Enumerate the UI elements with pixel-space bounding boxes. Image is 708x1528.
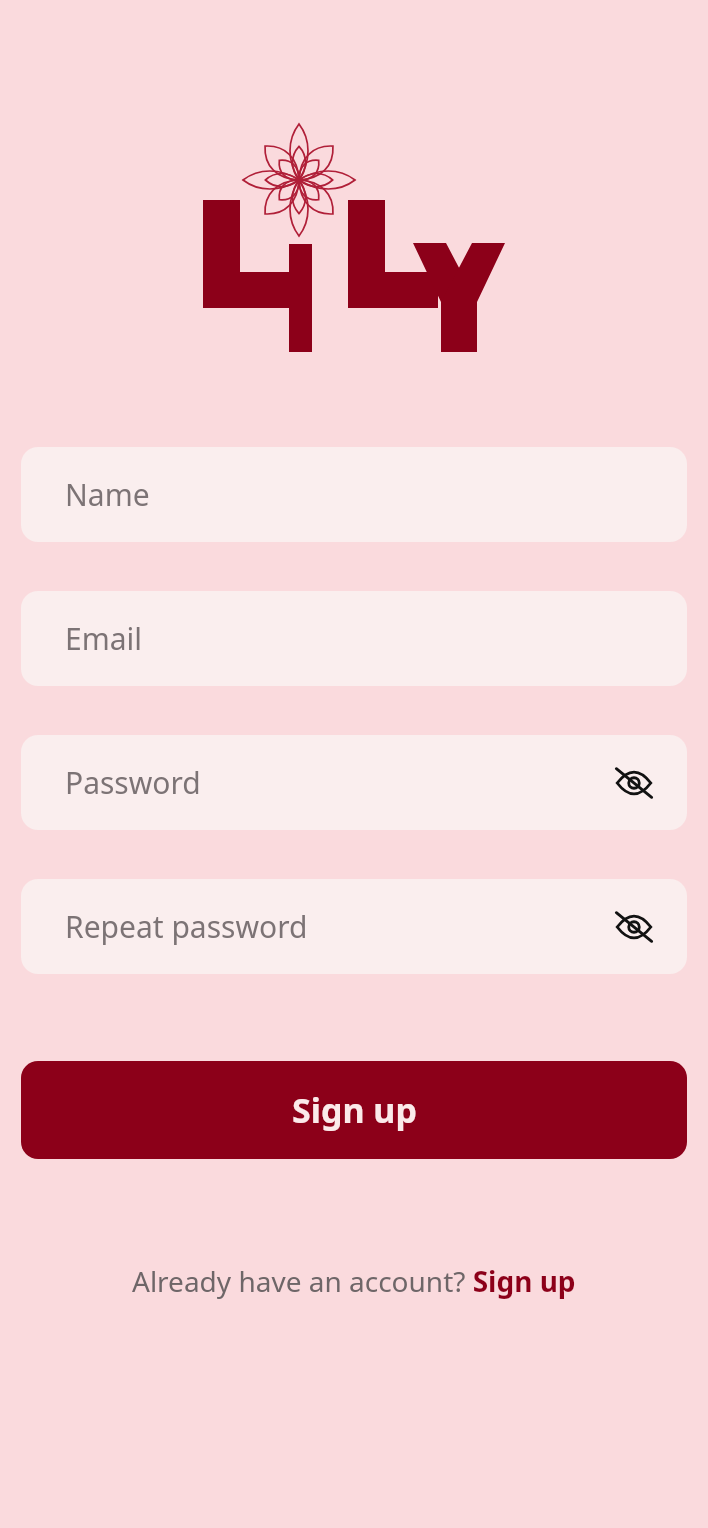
button[interactable]: Password [21, 735, 687, 830]
button[interactable]: Show password [607, 756, 661, 810]
button[interactable]: Email [21, 591, 687, 686]
button[interactable]: Name [21, 447, 687, 542]
staticText: Password [65, 762, 201, 803]
button[interactable]: Sign up [21, 1061, 687, 1159]
staticText: Name [65, 474, 150, 515]
staticText: Email [65, 618, 143, 659]
staticText: Already have an account? Sign up [132, 1262, 576, 1300]
staticText: Sign up [292, 1087, 417, 1133]
button[interactable]: Repeat password [21, 879, 687, 974]
button[interactable]: Show password [607, 900, 661, 954]
button[interactable]: Already have an account? Sign up [132, 1262, 576, 1300]
staticText: Repeat password [65, 906, 308, 947]
